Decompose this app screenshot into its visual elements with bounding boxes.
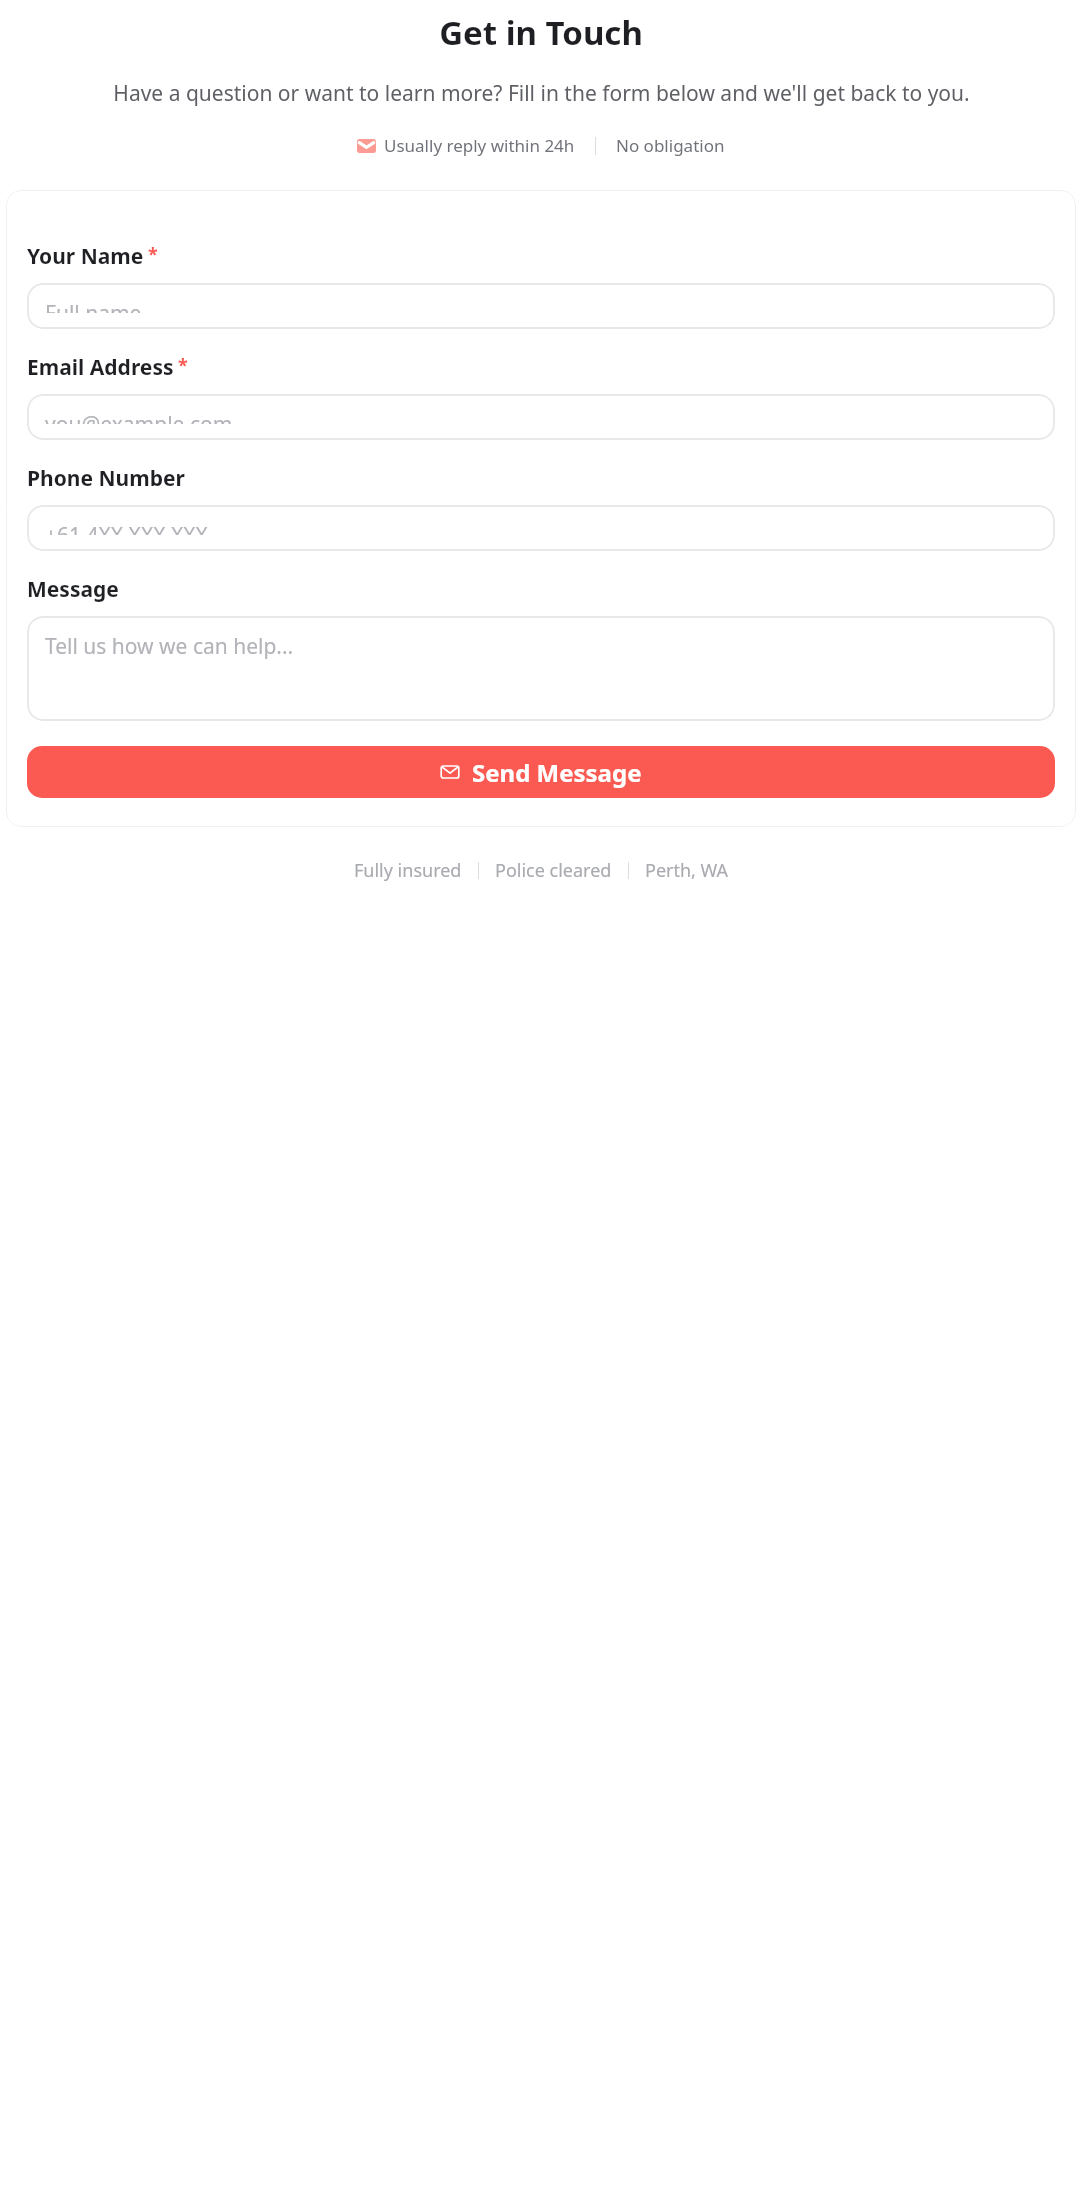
staticText: +61 4XX XXX XXX [45,521,208,535]
staticText: Perth, WA [645,858,729,883]
staticText: Send Message [472,756,642,789]
staticText: Have a question or want to learn more? F… [113,79,970,108]
button[interactable]: +61 4XX XXX XXX [27,505,1055,551]
staticText: No obligation [616,134,725,157]
staticText: Fully insured [354,858,462,883]
staticText: Email Address [27,353,174,382]
staticText: Usually reply within 24h [384,134,575,157]
staticText: * [178,353,188,378]
staticText: Phone Number [27,464,185,493]
staticText: Tell us how we can help... [45,632,294,661]
staticText: Your Name [27,242,144,271]
button[interactable]: you@example.com [27,394,1055,440]
button[interactable]: Tell us how we can help... [27,616,1055,721]
button[interactable]: Send Message [27,746,1055,798]
staticText: Get in Touch [439,10,643,55]
staticText: Full name [45,299,142,313]
button[interactable]: Full name [27,283,1055,329]
staticText: * [148,242,158,267]
staticText: Message [27,575,119,604]
staticText: you@example.com [45,410,233,424]
staticText: Police cleared [495,858,612,883]
